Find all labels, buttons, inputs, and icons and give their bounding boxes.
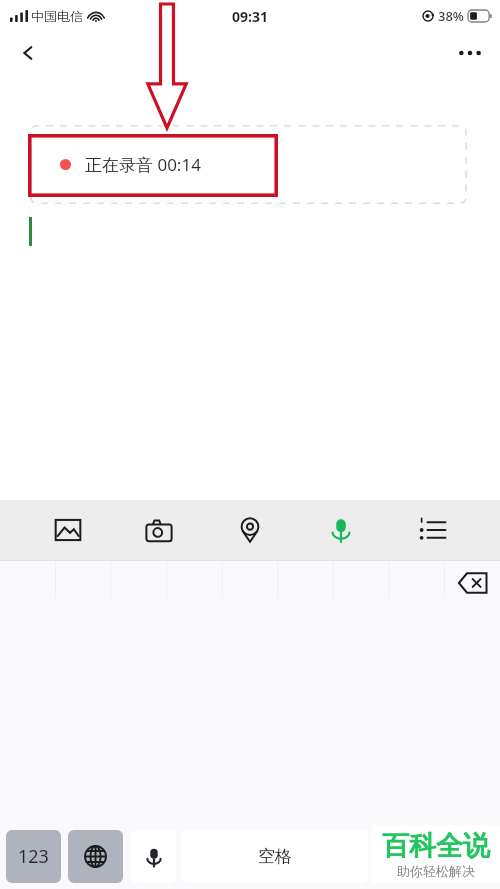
button[interactable]: 123 [6, 830, 61, 883]
button[interactable]: Insert image [41, 503, 95, 557]
staticText: 09:31 [232, 7, 268, 26]
staticText: 123 [18, 844, 49, 869]
staticText: 正在录音 00:14 [85, 153, 201, 176]
button[interactable]: Voice input [131, 830, 176, 883]
button[interactable]: List [405, 503, 459, 557]
button[interactable]: Backspace [452, 568, 494, 598]
staticText: 百科全说 [382, 829, 490, 863]
button[interactable]: Take photo [132, 503, 186, 557]
button[interactable]: Back [6, 32, 50, 74]
staticText: 空格 [258, 846, 292, 867]
staticText: 中国电信 [31, 8, 83, 24]
button[interactable]: Switch language [68, 830, 123, 883]
button[interactable]: 正在录音 00:14 [30, 125, 467, 204]
button[interactable]: 空格 [181, 830, 368, 883]
button[interactable]: Voice input [314, 503, 368, 557]
staticText: 38% [438, 7, 464, 25]
button[interactable]: Location [223, 503, 277, 557]
staticText: 助你轻松解决 [397, 863, 475, 879]
button[interactable]: More options [448, 32, 492, 74]
button[interactable]: Enter [375, 830, 494, 883]
